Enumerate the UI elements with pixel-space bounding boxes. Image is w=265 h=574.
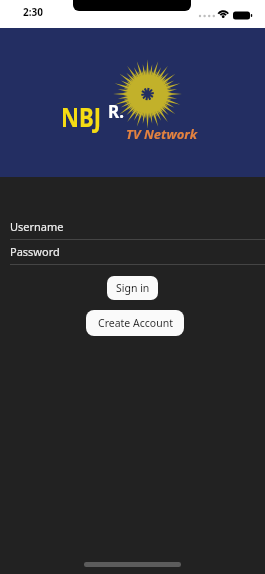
staticText: Sign in xyxy=(116,281,150,295)
staticText: TV Network xyxy=(126,125,198,143)
button[interactable]: Password xyxy=(0,238,265,265)
button[interactable]: Sign in xyxy=(107,276,158,300)
staticText: Create Account xyxy=(98,316,173,330)
staticText: R. xyxy=(108,100,124,123)
button[interactable]: Username xyxy=(0,213,265,240)
button[interactable]: Create Account xyxy=(86,310,184,336)
staticText: Password xyxy=(10,244,60,259)
staticText: NBJ xyxy=(61,98,101,135)
staticText: Username xyxy=(10,219,64,234)
staticText: 2:30 xyxy=(23,5,43,19)
